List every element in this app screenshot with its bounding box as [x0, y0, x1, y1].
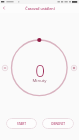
button[interactable]: START	[6, 118, 37, 129]
staticText: Minuty	[32, 77, 47, 83]
button[interactable]: Increase	[70, 64, 78, 72]
staticText: 0	[35, 59, 45, 82]
staticText: OBNOVIT	[51, 122, 65, 126]
button[interactable]: Back	[0, 4, 8, 12]
button[interactable]: OBNOVIT	[42, 118, 74, 129]
button[interactable]: Decrease	[1, 64, 9, 72]
staticText: Časovač ustálení	[25, 6, 55, 11]
staticText: START	[17, 122, 26, 126]
